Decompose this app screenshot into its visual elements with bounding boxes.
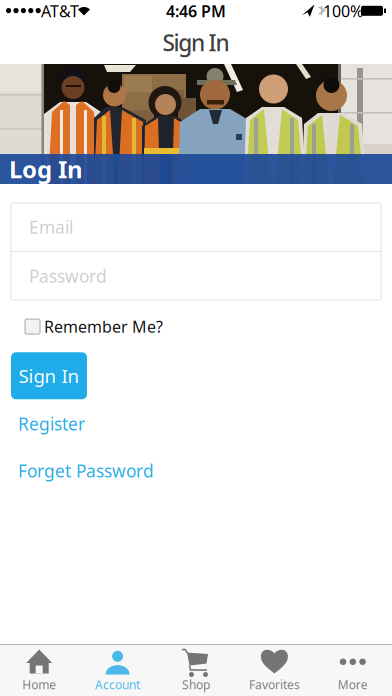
staticText: 4:46 PM	[166, 0, 226, 22]
staticText: Sign In	[18, 363, 79, 388]
button[interactable]: Register	[18, 412, 85, 435]
button[interactable]: Remember Me?	[25, 316, 163, 337]
button[interactable]: Password	[11, 252, 381, 300]
button[interactable]: More	[314, 645, 392, 696]
button[interactable]: Shop	[157, 645, 235, 696]
staticText: Forget Password	[18, 459, 154, 482]
button[interactable]: Email	[11, 203, 381, 251]
staticText: Sign In	[163, 27, 229, 57]
button[interactable]: Sign In	[11, 352, 87, 399]
staticText: AT&T	[41, 0, 79, 22]
button[interactable]: Favorites	[235, 645, 314, 696]
button[interactable]: Forget Password	[18, 459, 154, 482]
staticText: Home	[22, 676, 56, 692]
button[interactable]: Account	[78, 645, 157, 696]
staticText: Shop	[182, 676, 210, 692]
staticText: Register	[18, 412, 85, 435]
staticText: Account	[95, 676, 140, 692]
button[interactable]: Home	[0, 645, 78, 696]
staticText: Favorites	[249, 676, 300, 692]
staticText: Remember Me?	[44, 316, 163, 337]
staticText: Log In	[9, 153, 83, 185]
staticText: 100%	[323, 0, 363, 22]
staticText: Email	[29, 215, 73, 238]
staticText: More	[338, 676, 368, 692]
staticText: Password	[29, 264, 107, 287]
